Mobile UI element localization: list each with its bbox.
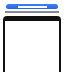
button[interactable] (6, 4, 58, 9)
